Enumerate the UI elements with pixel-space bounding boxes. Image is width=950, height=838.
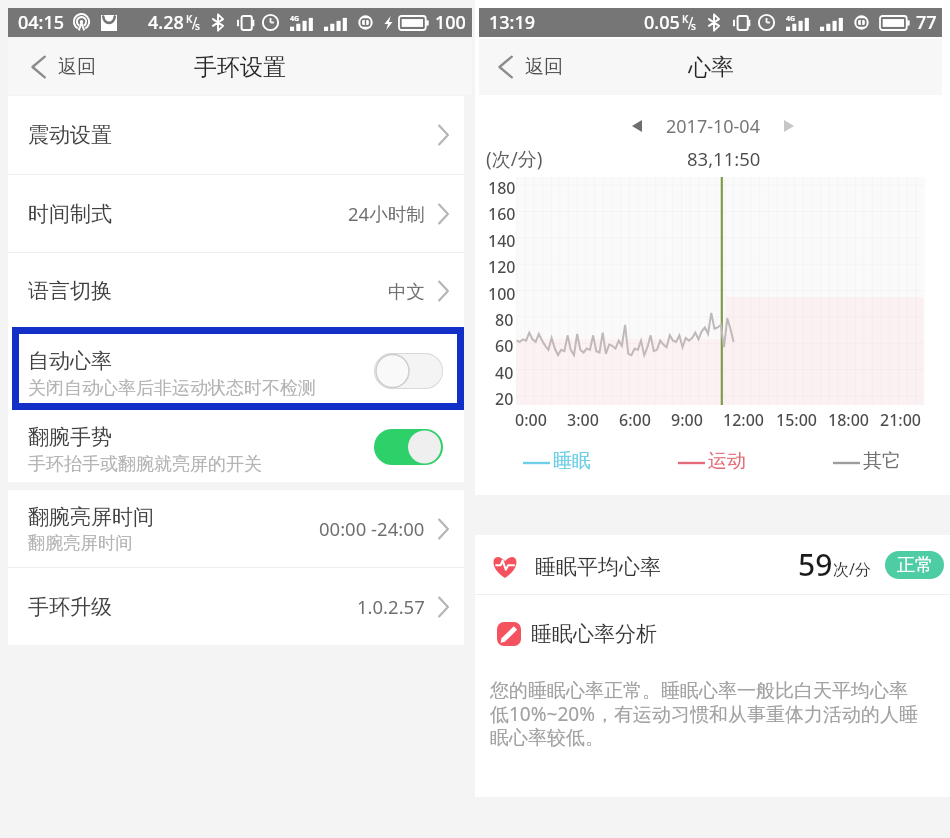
staticText: 120 (488, 256, 516, 278)
staticText: 9:00 (671, 409, 703, 431)
staticText: 0:00 (515, 409, 547, 431)
staticText: 翻腕手势 (28, 424, 112, 450)
staticText: 关闭自动心率后非运动状态时不检测 (28, 377, 316, 400)
staticText: 77 (916, 10, 937, 35)
button[interactable]: 睡眠平均心率 (475, 535, 950, 594)
staticText: 100 (435, 10, 466, 35)
staticText: 100 (488, 283, 516, 305)
staticText: 翻腕亮屏时间 (28, 504, 154, 530)
staticText: 13:19 (489, 10, 536, 35)
staticText: 2017-10-04 (666, 114, 760, 139)
staticText: 手环升级 (28, 594, 112, 620)
staticText: 运动 (708, 449, 746, 473)
staticText: 4.28 (148, 10, 184, 35)
button[interactable]: 翻腕亮屏时间 (8, 490, 464, 567)
staticText: 160 (488, 203, 516, 225)
button[interactable]: 其它 (833, 449, 901, 473)
staticText: 80 (495, 309, 514, 331)
button[interactable]: 震动设置 (8, 96, 464, 174)
button[interactable]: Back (31, 39, 96, 95)
staticText: 59 (798, 544, 833, 585)
button[interactable]: Switch on (374, 429, 443, 465)
staticText: 4G (786, 14, 796, 24)
staticText: 中文 (388, 280, 425, 303)
button[interactable]: Next day (776, 112, 802, 140)
staticText: 睡眠心率分析 (531, 621, 657, 647)
staticText: 04:15 (18, 10, 65, 35)
staticText: 返回 (525, 55, 563, 79)
button[interactable]: 自动心率 (8, 329, 464, 412)
staticText: 手环抬手或翻腕就亮屏的开关 (28, 453, 262, 476)
staticText: 21:00 (880, 409, 921, 431)
staticText: K (682, 12, 689, 26)
staticText: 其它 (863, 449, 901, 473)
staticText: 手环设置 (194, 53, 286, 82)
button[interactable]: 时间制式 (8, 175, 464, 252)
button[interactable]: 运动 (678, 449, 746, 473)
staticText: 40 (495, 362, 514, 384)
staticText: s (691, 19, 696, 33)
staticText: 00:00 -24:00 (319, 516, 425, 541)
staticText: 15:00 (776, 409, 817, 431)
staticText: 翻腕亮屏时间 (28, 532, 133, 554)
button[interactable]: Back (498, 39, 563, 95)
staticText: 60 (495, 335, 514, 357)
staticText: 4G (290, 14, 300, 24)
staticText: 1.0.2.57 (357, 594, 425, 619)
staticText: 6:00 (619, 409, 651, 431)
staticText: 时间制式 (28, 201, 112, 227)
staticText: 正常 (897, 554, 933, 577)
staticText: 语言切换 (28, 278, 112, 304)
button[interactable]: 正常 (885, 551, 944, 579)
button[interactable]: 睡眠心率分析 (475, 595, 950, 659)
button[interactable]: Switch off (374, 353, 443, 389)
staticText: 睡眠 (553, 449, 591, 473)
staticText: 24小时制 (348, 201, 425, 226)
staticText: 3:00 (567, 409, 599, 431)
staticText: 180 (488, 177, 516, 199)
staticText: 震动设置 (28, 122, 112, 148)
staticText: 自动心率 (28, 348, 112, 374)
staticText: 睡眠平均心率 (535, 554, 661, 580)
staticText: 20 (495, 388, 514, 410)
staticText: 返回 (58, 55, 96, 79)
button[interactable]: 翻腕手势 (8, 412, 464, 482)
staticText: (次/分) (486, 146, 543, 172)
staticText: 次/分 (833, 558, 871, 580)
staticText: 心率 (688, 53, 734, 82)
button[interactable]: Previous day (624, 112, 650, 140)
staticText: 12:00 (723, 409, 764, 431)
staticText: 83,11:50 (687, 146, 761, 171)
staticText: 0.05 (644, 10, 680, 35)
staticText: 18:00 (828, 409, 869, 431)
staticText: 140 (488, 230, 516, 252)
staticText: s (195, 19, 200, 33)
staticText: 您的睡眠心率正常。睡眠心率一般比白天平均心率低10%~20%，有运动习惯和从事重… (490, 679, 922, 750)
staticText: K (186, 12, 193, 26)
button[interactable]: 语言切换 (8, 253, 464, 329)
button[interactable]: 睡眠 (523, 449, 591, 473)
button[interactable]: 手环升级 (8, 568, 464, 645)
